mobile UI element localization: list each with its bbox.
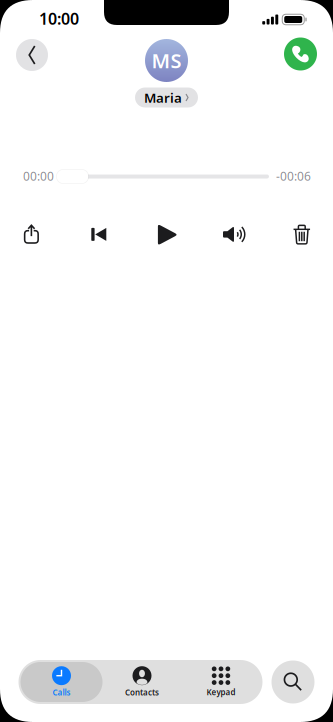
staticText: Calls [52,687,70,698]
staticText: -00:06 [276,168,311,184]
button[interactable]: Calls [20,662,102,702]
button[interactable]: Delete [277,220,327,250]
button[interactable]: Back [16,39,48,71]
button[interactable]: Search [271,660,314,703]
button[interactable]: Rewind [74,219,124,249]
button[interactable]: Share [6,219,56,249]
staticText: 10:00 [39,8,79,29]
staticText: MS [151,47,181,74]
button[interactable]: Maria contact details [135,87,198,107]
button[interactable]: Keypad [181,662,260,702]
button[interactable]: Call [284,37,317,70]
staticText: Keypad [206,687,235,697]
button[interactable]: Contacts [102,662,181,702]
button[interactable]: Speaker [209,219,259,249]
staticText: Contacts [125,687,159,698]
button[interactable]: Play [143,220,193,250]
staticText: Maria [144,89,182,106]
staticText: 00:00 [23,168,54,184]
